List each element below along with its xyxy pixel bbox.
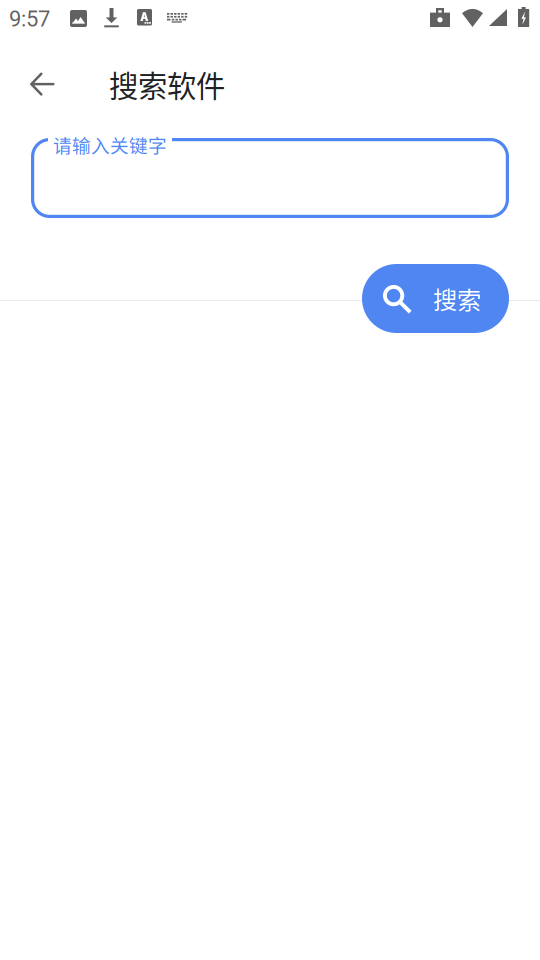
button[interactable]: Back <box>18 60 66 108</box>
staticText: 搜索软件 <box>109 63 225 105</box>
staticText: 请输入关键字 <box>53 131 167 158</box>
staticText: 搜索 <box>433 281 481 316</box>
button[interactable]: 搜索 <box>362 264 509 333</box>
staticText: 9:57 <box>9 6 50 32</box>
